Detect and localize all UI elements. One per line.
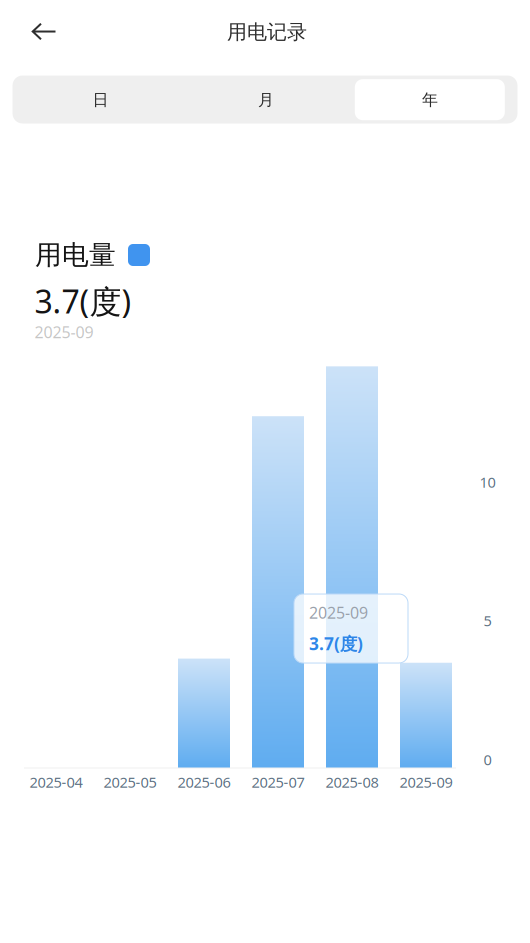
button[interactable]: Back <box>0 0 80 62</box>
staticText: 2025-08 <box>325 772 378 792</box>
staticText: 用电记录 <box>227 20 307 44</box>
staticText: 2025-09 <box>34 321 93 343</box>
staticText: 0 <box>483 750 491 769</box>
staticText: 2025-09 <box>309 602 368 623</box>
staticText: 5 <box>483 611 491 630</box>
button[interactable]: 日 <box>18 76 183 123</box>
staticText: 3.7(度) <box>309 632 363 655</box>
staticText: 10 <box>479 472 495 492</box>
staticText: 2025-04 <box>29 772 82 792</box>
staticText: 3.7(度) <box>34 280 131 322</box>
staticText: 2025-07 <box>251 772 304 792</box>
staticText: 年 <box>422 90 438 110</box>
button[interactable]: 年 <box>347 76 512 123</box>
staticText: 2025-06 <box>177 772 230 792</box>
staticText: 2025-09 <box>399 772 452 792</box>
staticText: 2025-05 <box>103 772 156 792</box>
button[interactable]: 月 <box>183 76 348 123</box>
staticText: 月 <box>258 90 274 110</box>
staticText: 用电量 <box>35 239 116 271</box>
staticText: 日 <box>92 90 108 110</box>
